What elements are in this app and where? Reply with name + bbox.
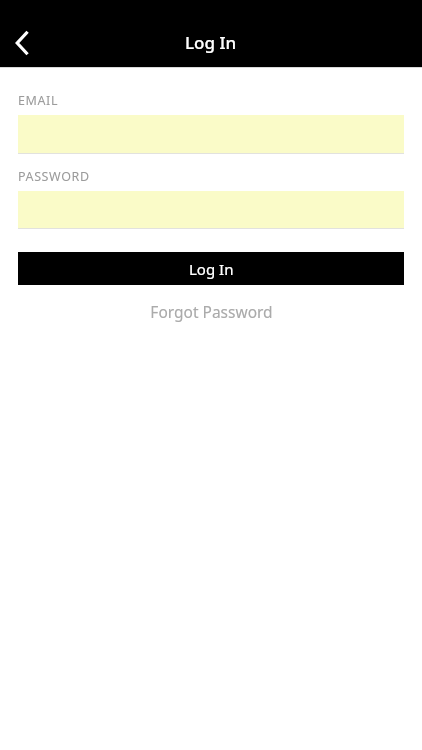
button[interactable]: Forgot Password: [18, 285, 404, 337]
button[interactable]: [18, 115, 404, 154]
button[interactable]: Log In: [18, 252, 404, 285]
staticText: Forgot Password: [150, 301, 273, 322]
staticText: Log In: [189, 259, 234, 279]
staticText: Log In: [185, 31, 237, 54]
button[interactable]: [18, 191, 404, 229]
button[interactable]: Back: [0, 21, 44, 65]
staticText: PASSWORD: [18, 168, 90, 185]
staticText: EMAIL: [18, 92, 59, 109]
